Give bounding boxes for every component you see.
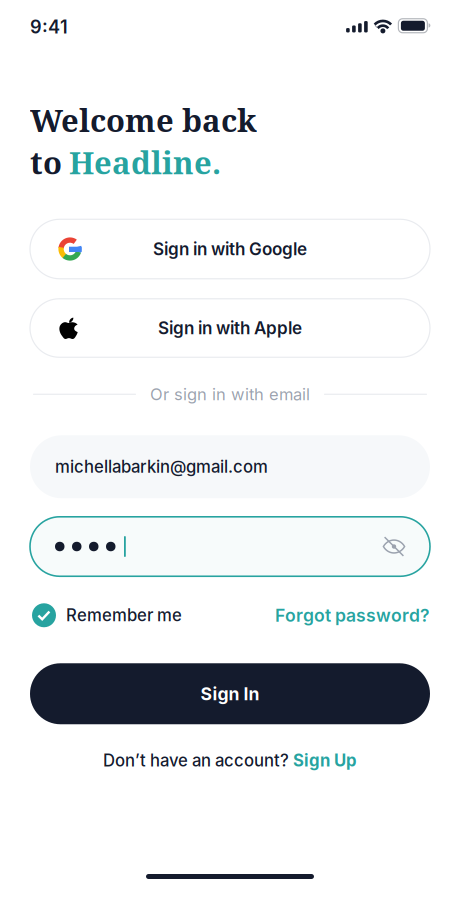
staticText: Sign In — [200, 683, 259, 704]
staticText: Headline. — [69, 141, 221, 183]
staticText: Welcome back — [30, 99, 257, 141]
button[interactable]: Remember me — [32, 603, 182, 627]
staticText: Sign in with Google — [153, 239, 307, 259]
button[interactable]: Forgot password? — [275, 605, 430, 626]
staticText: Forgot password? — [275, 605, 430, 626]
staticText: 9:41 — [30, 16, 68, 38]
button[interactable]: Sign In — [30, 663, 430, 724]
staticText: Remember me — [66, 605, 182, 625]
staticText: Don’t have an account? — [103, 750, 293, 770]
staticText: michellabarkin@gmail.com — [55, 457, 268, 477]
staticText: Or sign in with email — [150, 384, 310, 404]
staticText: to — [30, 141, 62, 183]
button[interactable]: Sign in with Apple — [30, 299, 430, 357]
button[interactable]: Sign in with Google — [30, 219, 430, 279]
staticText: Sign Up — [293, 750, 357, 770]
button[interactable]: Sign Up — [293, 750, 357, 770]
staticText: Sign in with Apple — [158, 318, 302, 338]
